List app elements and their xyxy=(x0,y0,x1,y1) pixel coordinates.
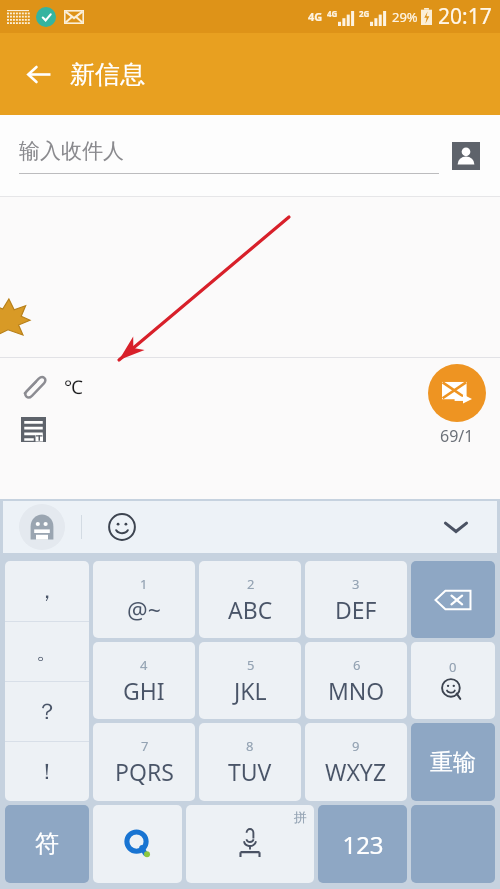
staticText: WXYZ xyxy=(325,756,387,787)
staticText: JKL xyxy=(234,675,267,706)
button[interactable]: 4 xyxy=(93,642,195,719)
button[interactable]: 重输 xyxy=(411,723,495,801)
button[interactable]: ！ xyxy=(5,742,89,801)
button[interactable]: 符 xyxy=(5,805,89,883)
staticText: MNO xyxy=(328,675,385,706)
staticText: DEF xyxy=(335,594,377,625)
staticText: 2 xyxy=(247,575,255,593)
button[interactable]: Input method xyxy=(19,504,65,550)
staticText: @~ xyxy=(127,594,161,625)
button[interactable]: 6 xyxy=(305,642,407,719)
staticText: 。 xyxy=(36,638,58,666)
staticText: ！ xyxy=(36,758,58,786)
staticText: 符 xyxy=(35,829,59,859)
button[interactable]: 3 xyxy=(305,561,407,638)
staticText: ABC xyxy=(228,594,273,625)
staticText: 4 xyxy=(140,656,148,674)
button[interactable]: 5 xyxy=(199,642,301,719)
staticText: 4G xyxy=(308,9,323,24)
staticText: 1 xyxy=(140,575,148,593)
staticText: 6 xyxy=(353,656,361,674)
button[interactable]: 2 xyxy=(199,561,301,638)
button[interactable]: ？ xyxy=(5,682,89,741)
button[interactable]: ， xyxy=(5,561,89,621)
staticText: 拼 xyxy=(294,809,307,825)
staticText: 69/1 xyxy=(440,425,474,447)
button[interactable]: Attach xyxy=(16,370,50,404)
staticText: 新信息 xyxy=(70,59,145,90)
staticText: PQRS xyxy=(115,756,174,787)
staticText: 重输 xyxy=(430,748,476,777)
button[interactable]: Emoji xyxy=(101,506,143,548)
button[interactable]: Pick contact xyxy=(451,141,481,171)
staticText: 0 xyxy=(449,658,457,676)
staticText: 29% xyxy=(392,8,418,26)
button[interactable]: Search xyxy=(93,805,182,883)
button[interactable]: 9 xyxy=(305,723,407,801)
button[interactable]: Emoticons, 0 xyxy=(411,642,495,719)
staticText: 123 xyxy=(342,828,384,861)
staticText: 5 xyxy=(247,656,255,674)
staticText: 输入收件人 xyxy=(19,138,124,164)
button[interactable]: Text template xyxy=(16,412,50,446)
button[interactable]: Send xyxy=(428,364,486,422)
staticText: TUV xyxy=(228,756,272,787)
staticText: ℃ xyxy=(64,374,83,400)
button[interactable]: Back xyxy=(14,49,64,99)
button[interactable]: 。 xyxy=(5,622,89,681)
button[interactable]: Hide keyboard xyxy=(435,506,477,548)
staticText: 4G xyxy=(327,8,338,19)
button[interactable]: 7 xyxy=(93,723,195,801)
button[interactable]: 8 xyxy=(199,723,301,801)
button[interactable]: 123 xyxy=(318,805,407,883)
staticText: 8 xyxy=(246,737,254,755)
staticText: 3 xyxy=(352,575,360,593)
button[interactable]: 1 xyxy=(93,561,195,638)
staticText: 2G xyxy=(359,8,370,19)
staticText: 20:17 xyxy=(438,2,492,31)
staticText: 9 xyxy=(352,737,360,755)
staticText: ？ xyxy=(36,698,58,726)
button[interactable]: Backspace xyxy=(411,561,495,638)
button[interactable]: 输入收件人 xyxy=(19,138,439,174)
staticText: 7 xyxy=(141,737,149,755)
staticText: ， xyxy=(36,577,58,605)
staticText: GHI xyxy=(123,675,165,706)
button[interactable]: Space / voice xyxy=(186,805,314,883)
